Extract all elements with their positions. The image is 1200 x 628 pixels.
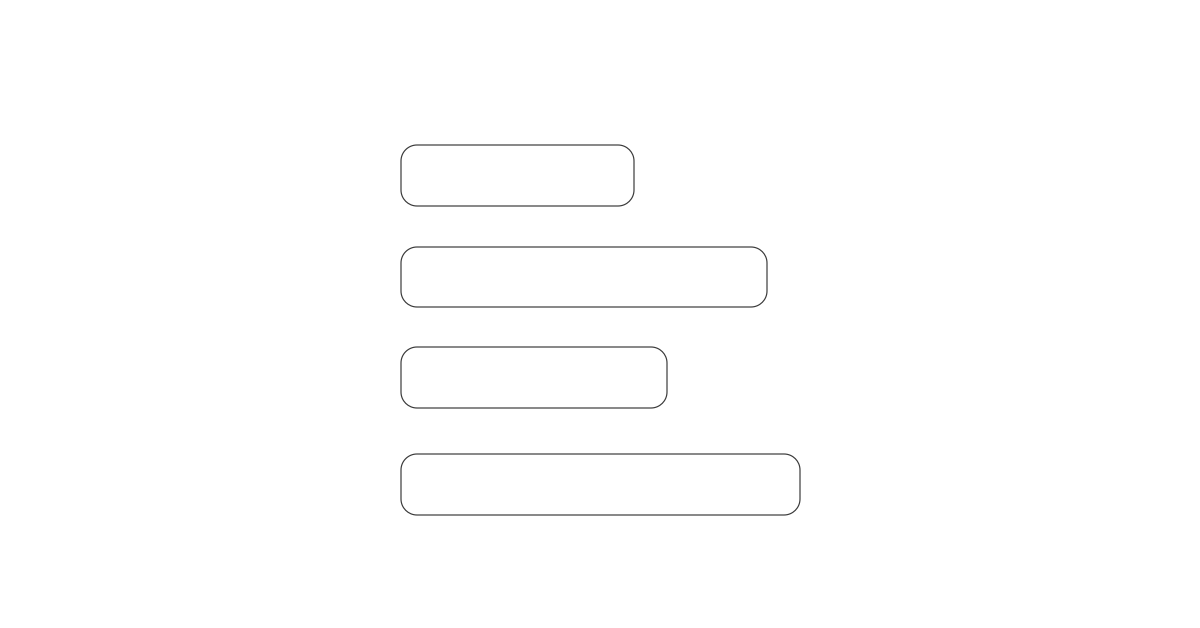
button[interactable]: Placeholder row 3 <box>401 347 667 408</box>
button[interactable]: Placeholder row 1 <box>401 145 634 206</box>
button[interactable]: Placeholder row 2 <box>401 247 767 307</box>
button[interactable]: Placeholder row 4 <box>401 454 800 515</box>
